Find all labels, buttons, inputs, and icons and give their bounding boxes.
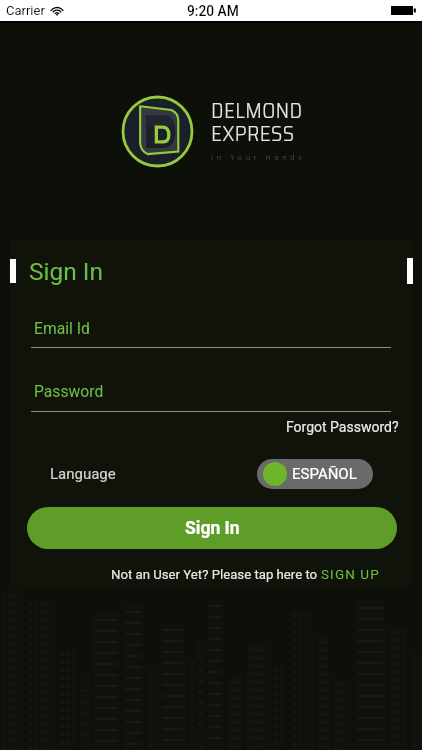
button[interactable]: SIGN UP — [321, 566, 380, 582]
staticText: Sign In — [29, 257, 104, 286]
staticText: Password — [34, 382, 104, 400]
button[interactable]: Forgot Password? — [286, 419, 399, 435]
button[interactable]: ESPAÑOL — [257, 459, 373, 489]
staticText: Carrier — [6, 3, 45, 18]
button[interactable]: Sign In — [26, 257, 104, 286]
staticText: Forgot Password? — [286, 419, 399, 435]
staticText: Email Id — [34, 319, 90, 337]
staticText: Sign In — [185, 518, 240, 539]
staticText: DELMOND — [211, 94, 303, 127]
staticText: 9:20 AM — [187, 3, 239, 19]
button[interactable]: Sign In — [27, 507, 397, 549]
staticText: SIGN UP — [321, 566, 380, 582]
staticText: Language — [50, 465, 116, 483]
staticText: Not an User Yet? Please tap here to — [111, 567, 321, 582]
staticText: In Your Hands — [211, 151, 306, 164]
other: Delmond Express logo — [121, 95, 194, 168]
staticText: ESPAÑOL — [292, 465, 357, 483]
staticText: EXPRESS — [211, 117, 295, 150]
